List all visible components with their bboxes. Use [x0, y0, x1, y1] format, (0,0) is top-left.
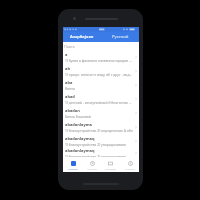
button[interactable]: abadanlaymaq: [63, 148, 139, 157]
staticText: 1) благоустройство 2) упорядочивать: [65, 154, 127, 157]
staticText: abad: [65, 94, 75, 99]
button[interactable]: abad: [63, 92, 139, 106]
staticText: История: [87, 167, 97, 170]
staticText: a: [65, 52, 68, 57]
staticText: Закладки: [105, 167, 116, 170]
staticText: abadanlaymaq: [65, 136, 95, 141]
button[interactable]: История: [82, 157, 101, 172]
staticText: Поиск: [64, 44, 75, 49]
staticText: ab: [65, 66, 70, 71]
staticText: 1) буква а фазаного названия городов и п…: [65, 58, 133, 63]
button[interactable]: abadan: [63, 106, 139, 120]
staticText: 1) благоустройство 2) упорядочивать: [65, 142, 127, 147]
staticText: Азәрбајҹан: [70, 34, 94, 40]
staticText: Словарь: [68, 167, 78, 170]
staticText: Русский: [112, 34, 129, 40]
button[interactable]: Азәрбајҹан: [63, 32, 101, 42]
button[interactable]: Закладки: [101, 157, 120, 172]
button[interactable]: О прогр.: [120, 157, 139, 172]
staticText: Биксы Башевой: [65, 114, 91, 119]
staticText: О прогр.: [125, 167, 135, 170]
button[interactable]: abadanlayma: [63, 120, 139, 134]
button[interactable]: a: [63, 50, 139, 64]
button[interactable]: ab: [63, 64, 139, 78]
button[interactable]: Русский: [101, 32, 139, 42]
staticText: abadanlayma: [65, 122, 93, 127]
staticText: 1) предл. относит к виду аб с друг - вид…: [65, 72, 133, 77]
staticText: 1) благоустройство 2) определение А обл: [65, 128, 133, 133]
staticText: 1) детский - вечернийный б благоство пол…: [65, 100, 133, 105]
staticText: abadanlaymaq: [65, 148, 95, 153]
button[interactable]: Словарь: [63, 157, 82, 172]
staticText: Казня: [65, 86, 75, 91]
staticText: aba: [65, 80, 73, 85]
button[interactable]: abadanlaymaq: [63, 134, 139, 148]
staticText: abadan: [65, 108, 80, 113]
button[interactable]: aba: [63, 78, 139, 92]
